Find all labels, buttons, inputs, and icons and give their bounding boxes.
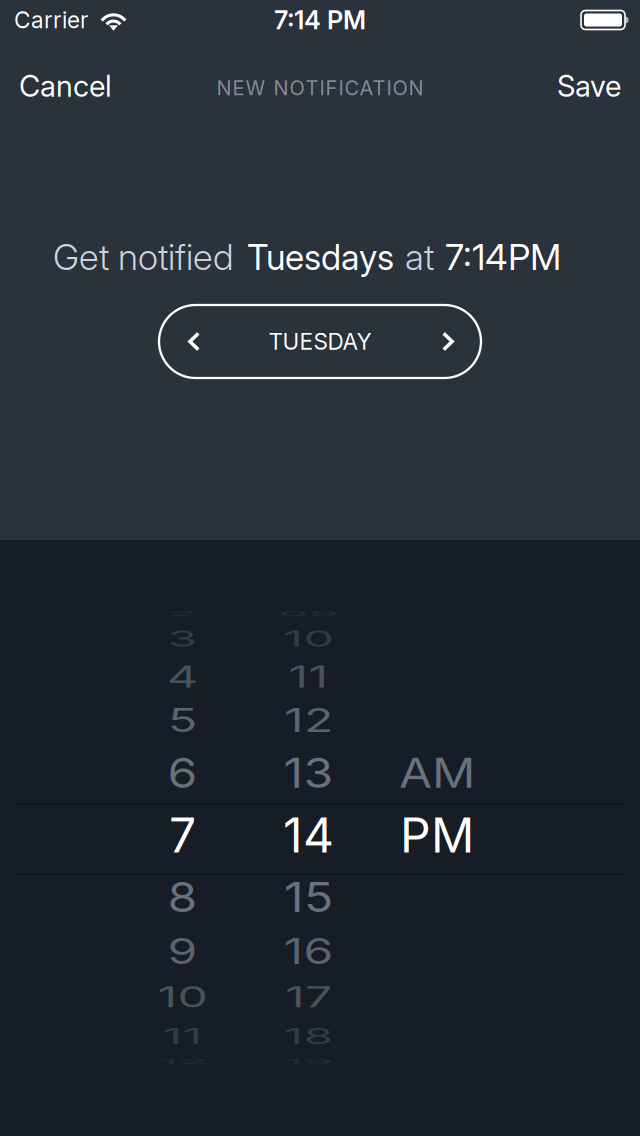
button[interactable]: Save xyxy=(541,40,640,128)
staticText: 12 xyxy=(158,1032,207,1091)
staticText: 9 xyxy=(167,922,197,980)
staticText: at xyxy=(405,235,434,279)
staticText: 8 xyxy=(167,868,197,926)
staticText: 13 xyxy=(283,744,333,802)
staticText: 12 xyxy=(284,691,333,749)
staticText: 10 xyxy=(157,968,207,1026)
staticText: TUESDAY xyxy=(268,328,371,355)
staticText: Save xyxy=(557,68,621,104)
staticText: 6 xyxy=(167,744,197,802)
button[interactable]: TUESDAY xyxy=(159,305,481,378)
staticText: 3 xyxy=(167,609,197,667)
staticText: 11 xyxy=(288,647,328,706)
staticText: 16 xyxy=(283,922,333,980)
staticText: 18 xyxy=(283,1007,333,1065)
staticText: 7 xyxy=(169,806,196,864)
staticText: Carrier xyxy=(14,6,88,34)
staticText: 10 xyxy=(283,609,333,667)
staticText: 17 xyxy=(285,968,332,1026)
staticText: Tuesdays xyxy=(247,236,394,278)
staticText: Get notified xyxy=(53,235,234,279)
staticText: PM xyxy=(400,806,474,864)
button[interactable]: Cancel xyxy=(0,40,128,128)
staticText: 4 xyxy=(167,647,198,706)
staticText: 19 xyxy=(283,1032,333,1091)
staticText: 15 xyxy=(284,868,333,926)
staticText: 09 xyxy=(278,584,338,643)
staticText: 11 xyxy=(162,1007,202,1065)
staticText: 7:14PM xyxy=(445,235,561,279)
staticText: 7:14 PM xyxy=(274,5,366,35)
staticText: Cancel xyxy=(19,68,112,104)
staticText: 2 xyxy=(168,584,197,643)
staticText: 14 xyxy=(283,806,334,864)
staticText: 5 xyxy=(168,691,197,749)
staticText: AM xyxy=(399,744,475,802)
staticText: NEW NOTIFICATION xyxy=(216,76,423,100)
